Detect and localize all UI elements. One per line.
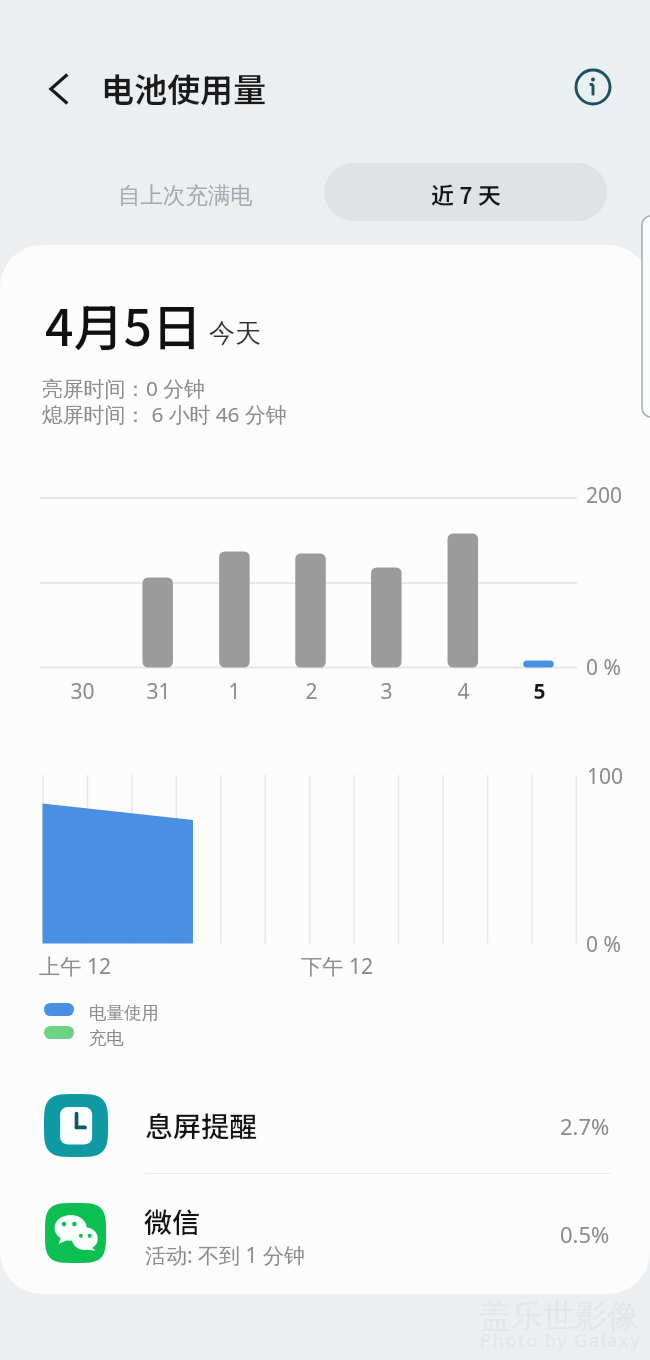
button[interactable]: 近 7 天 <box>324 163 607 221</box>
staticText: 熄屏时间： 6 小时 46 分钟 <box>42 400 287 428</box>
button[interactable]: Edge panel handle <box>642 216 650 417</box>
staticText: 自上次充满电 <box>118 181 253 209</box>
staticText: 31 <box>146 677 171 706</box>
staticText: 亮屏时间：0 分钟 <box>42 374 205 402</box>
staticText: 3 <box>380 677 393 706</box>
staticText: 今天 <box>209 317 261 350</box>
staticText: 0 % <box>586 930 621 959</box>
staticText: 0.5% <box>560 1219 610 1249</box>
staticText: 4月5日 <box>45 288 202 360</box>
staticText: 电池使用量 <box>101 64 266 112</box>
staticText: 5 <box>533 677 546 706</box>
staticText: 活动: 不到 1 分钟 <box>145 1241 306 1270</box>
button[interactable]: Back <box>32 60 90 118</box>
staticText: 盖乐世影像 <box>479 1296 639 1336</box>
button[interactable]: 息屏提醒 <box>0 1082 650 1170</box>
staticText: 2.7% <box>560 1111 610 1141</box>
staticText: 0 % <box>586 653 621 682</box>
staticText: 100 <box>587 762 624 791</box>
staticText: 充电 <box>89 1027 124 1049</box>
button[interactable]: Information <box>564 58 621 115</box>
staticText: 1 <box>228 677 241 706</box>
staticText: 微信 <box>144 1201 201 1242</box>
button[interactable]: 微信 <box>0 1186 650 1283</box>
staticText: 30 <box>70 677 95 706</box>
staticText: 上午 12 <box>39 951 112 980</box>
button[interactable]: 自上次充满电 <box>60 163 310 221</box>
staticText: Photo by Galaxy <box>480 1328 642 1353</box>
staticText: 4 <box>457 677 470 706</box>
staticText: 电量使用 <box>89 1002 159 1024</box>
staticText: 下午 12 <box>301 951 374 980</box>
staticText: 2 <box>305 677 318 706</box>
staticText: 200 <box>586 481 623 510</box>
staticText: 近 7 天 <box>431 177 501 210</box>
staticText: 息屏提醒 <box>145 1105 258 1146</box>
